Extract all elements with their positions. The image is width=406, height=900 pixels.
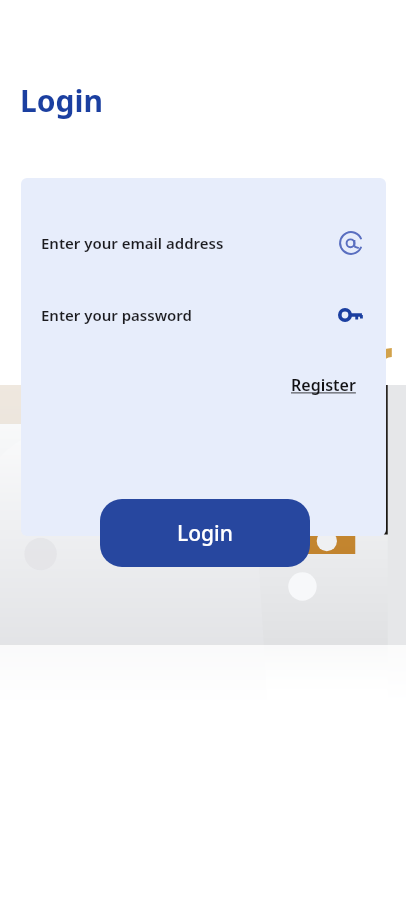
button[interactable]: Enter your email address xyxy=(21,220,386,266)
button[interactable]: Login xyxy=(100,499,310,567)
other: Password xyxy=(338,302,364,328)
staticText: Enter your password xyxy=(41,305,192,325)
staticText: Register xyxy=(291,374,356,396)
staticText: Login xyxy=(177,519,233,548)
button[interactable]: Enter your password xyxy=(21,292,386,338)
staticText: Enter your email address xyxy=(41,233,224,253)
other: Email xyxy=(338,230,364,256)
button[interactable]: Register xyxy=(261,368,386,402)
staticText: Login xyxy=(20,80,103,121)
